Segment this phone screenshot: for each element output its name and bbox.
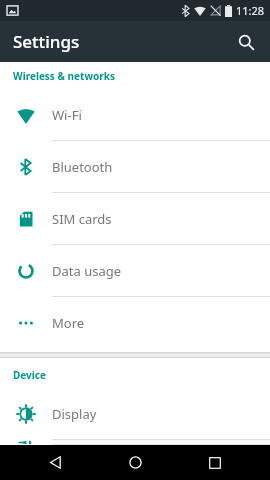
staticText: SIM cards (52, 210, 112, 228)
staticText: Sound & notification (52, 440, 177, 445)
staticText: Device (13, 368, 46, 382)
button[interactable]: Search (228, 24, 264, 60)
button[interactable]: Wi-Fi (0, 89, 270, 141)
button[interactable]: More (0, 297, 270, 349)
staticText: Settings (13, 30, 80, 53)
button[interactable]: Sound & notification (0, 440, 270, 445)
staticText: Bluetooth (52, 158, 113, 176)
button[interactable]: Bluetooth (0, 141, 270, 193)
staticText: Data usage (52, 262, 122, 280)
button[interactable]: Home (110, 445, 160, 480)
button[interactable]: Recent apps (190, 445, 240, 480)
staticText: Display (52, 405, 97, 423)
staticText: More (52, 314, 85, 332)
button[interactable]: SIM cards (0, 193, 270, 245)
staticText: Wireless & networks (13, 69, 115, 83)
button[interactable]: Back (30, 445, 80, 480)
button[interactable]: Data usage (0, 245, 270, 297)
staticText: 11:28 (236, 3, 265, 18)
button[interactable]: Display (0, 388, 270, 440)
staticText: Wi-Fi (52, 106, 82, 124)
